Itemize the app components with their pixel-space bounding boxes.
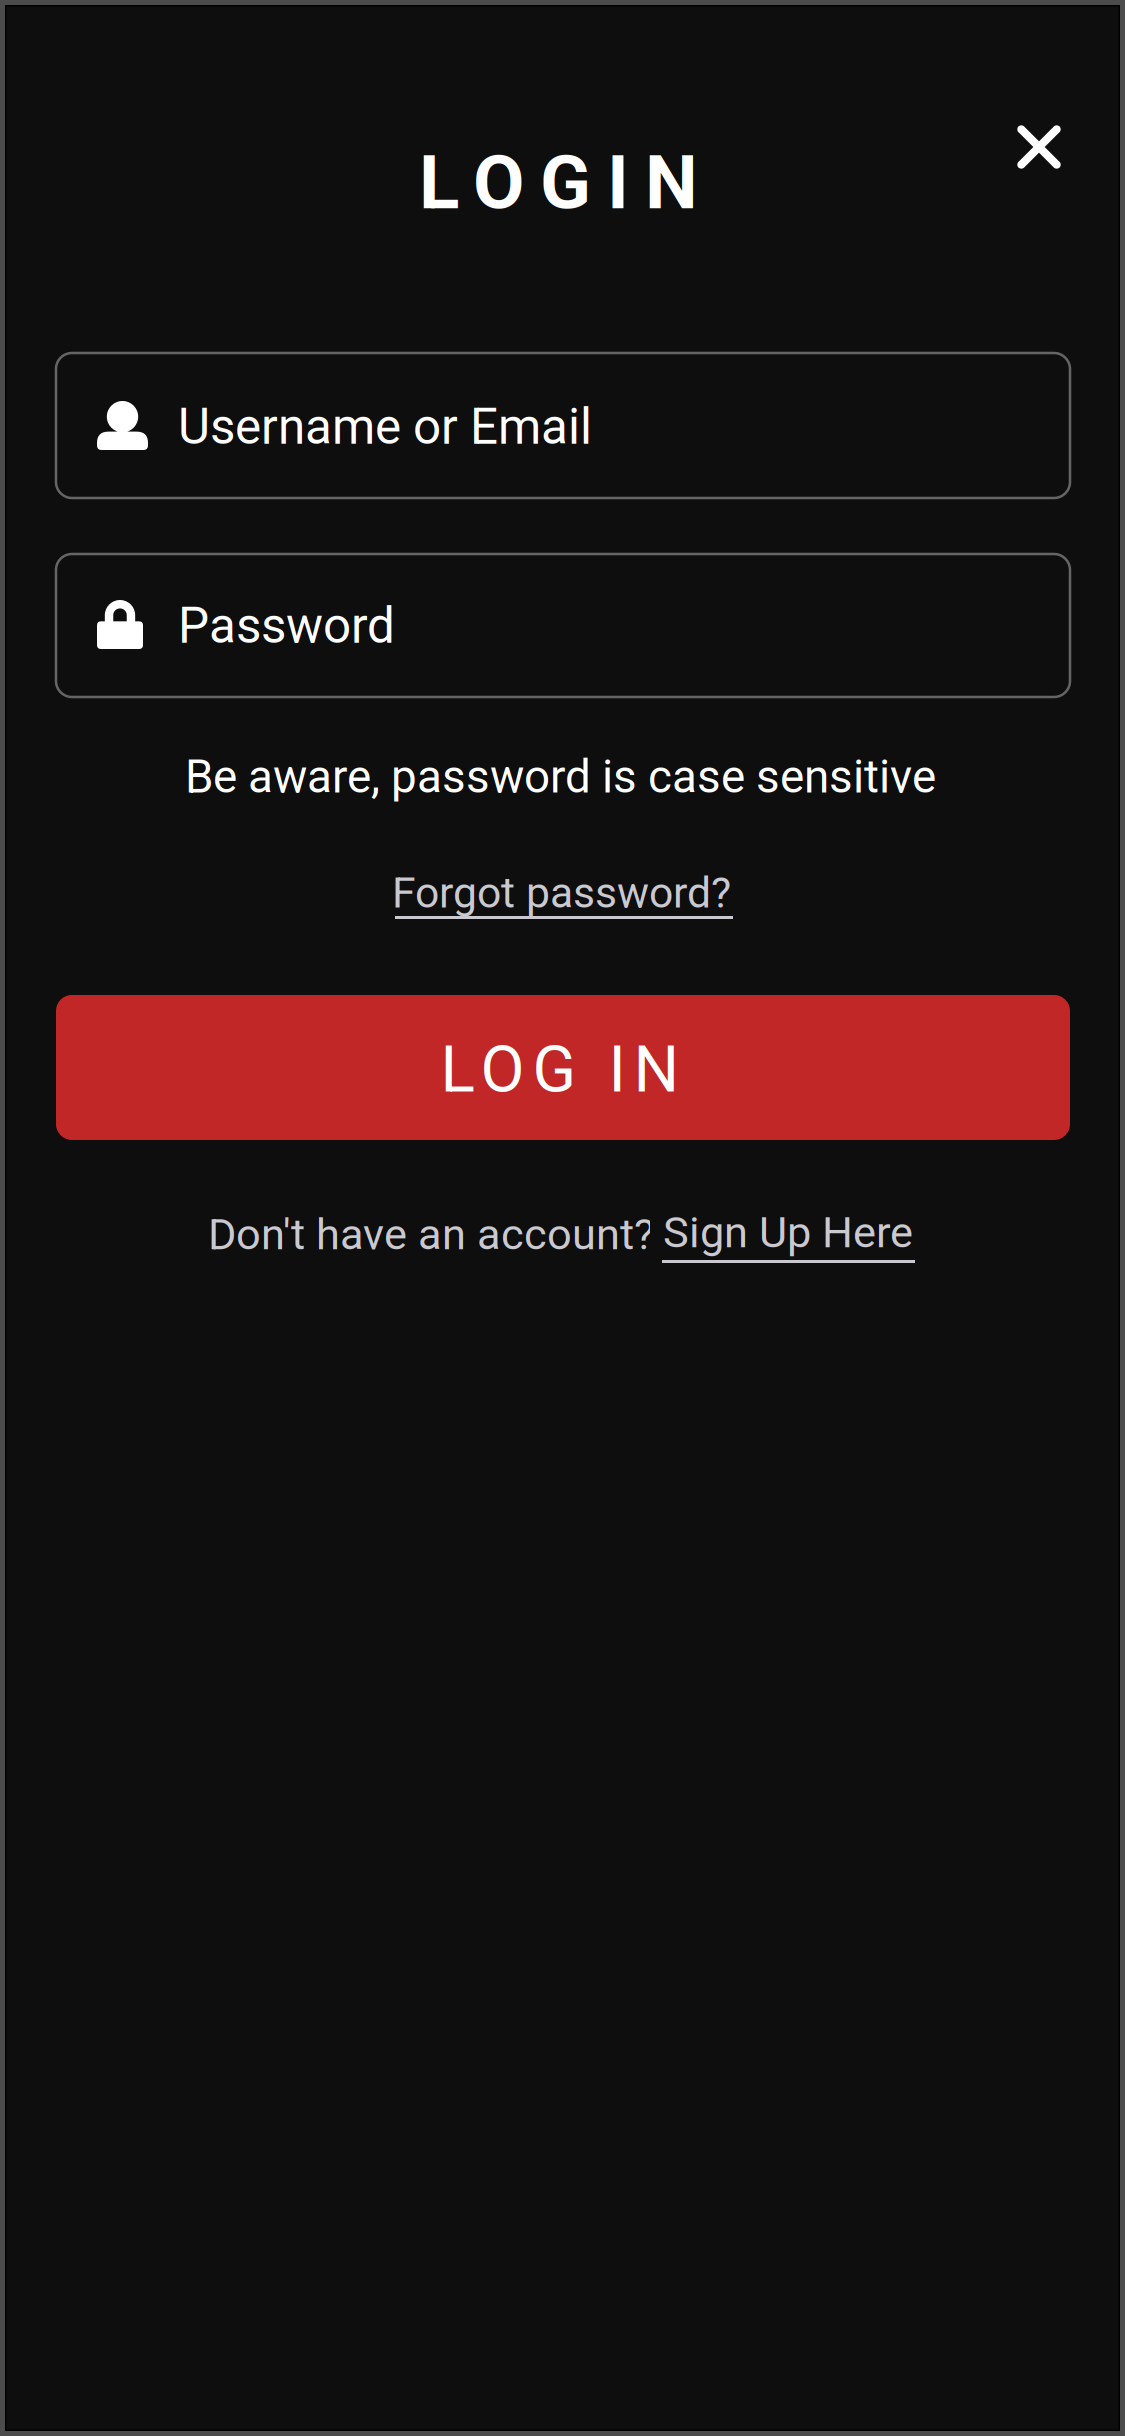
staticText: Be aware, password is case sensitive xyxy=(185,750,936,804)
button[interactable]: Password xyxy=(56,554,1070,697)
staticText: LOGIN xyxy=(419,139,698,226)
button[interactable]: Close xyxy=(985,93,1093,201)
staticText: LOG IN xyxy=(440,1032,679,1107)
button[interactable]: LOG IN xyxy=(56,995,1070,1140)
staticText: Don't have an account? xyxy=(208,1209,665,1260)
staticText: Password xyxy=(178,597,395,655)
staticText: Sign Up Here xyxy=(663,1207,913,1258)
staticText: Forgot password? xyxy=(392,868,731,918)
staticText: Username or Email xyxy=(178,398,592,456)
button[interactable]: Username or Email xyxy=(56,353,1070,498)
button[interactable]: Forgot password? xyxy=(380,852,746,936)
button[interactable]: Sign Up Here xyxy=(650,1195,928,1277)
